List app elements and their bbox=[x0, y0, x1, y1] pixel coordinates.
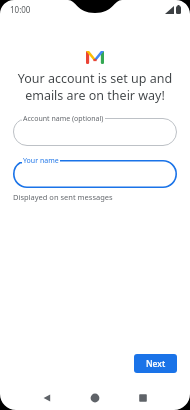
staticText: Next bbox=[146, 358, 166, 370]
button[interactable]: Account name (optional) bbox=[13, 118, 177, 146]
button[interactable]: Home bbox=[90, 393, 100, 403]
button[interactable]: Recent apps bbox=[138, 393, 148, 403]
button[interactable]: Your name bbox=[13, 160, 177, 188]
button[interactable]: Back bbox=[42, 393, 52, 403]
staticText: Your name bbox=[23, 156, 59, 166]
button[interactable]: Next bbox=[134, 354, 177, 373]
staticText: Displayed on sent messages bbox=[13, 192, 113, 202]
staticText: Your account is set up and emails are on… bbox=[14, 70, 176, 104]
staticText: 10:00 bbox=[10, 4, 31, 15]
staticText: Account name (optional) bbox=[23, 114, 104, 124]
